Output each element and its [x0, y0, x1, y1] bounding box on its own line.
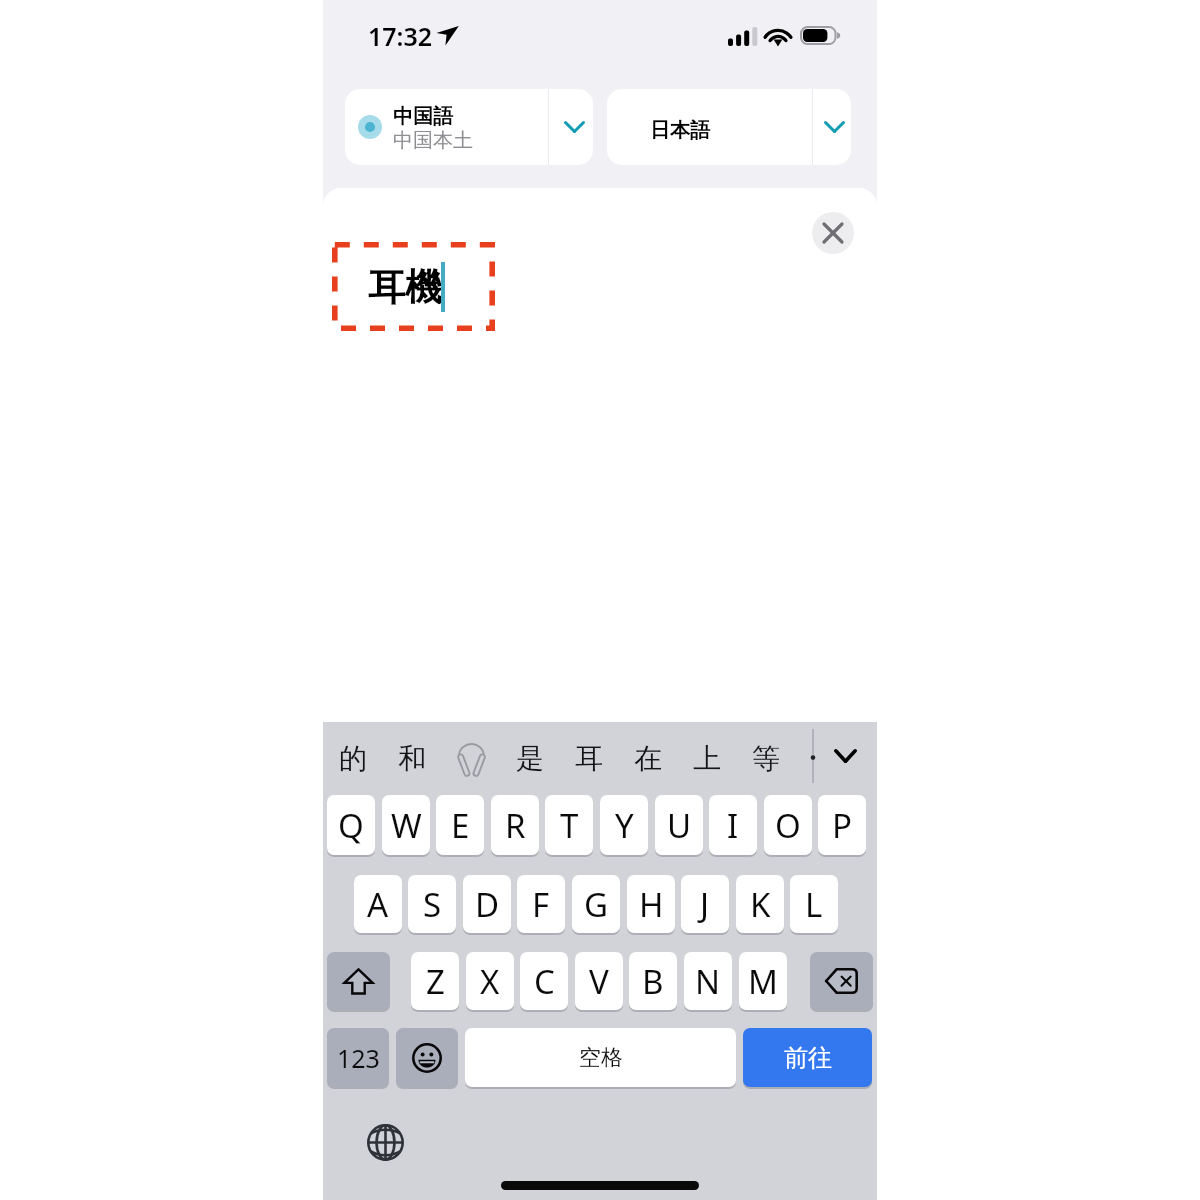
button[interactable]: K — [736, 875, 784, 933]
staticText: 空格 — [579, 1044, 623, 1072]
button[interactable]: 中国語 — [345, 89, 548, 165]
staticText: 是 — [516, 741, 544, 776]
staticText: T — [560, 803, 579, 848]
button[interactable]: 的 — [325, 725, 381, 791]
button[interactable]: Change target language — [813, 89, 851, 165]
staticText: 和 — [398, 741, 426, 776]
button[interactable]: Z — [411, 952, 459, 1010]
button[interactable]: R — [491, 795, 539, 855]
staticText: I — [727, 803, 739, 848]
staticText: R — [505, 803, 526, 848]
staticText: 17:32 — [368, 19, 433, 51]
staticText: U — [667, 803, 692, 848]
button[interactable]: S — [408, 875, 456, 933]
button[interactable]: E — [436, 795, 484, 855]
button[interactable]: Switch keyboard language — [363, 1120, 408, 1165]
staticText: N — [695, 959, 721, 1004]
staticText: O — [775, 803, 801, 848]
staticText: K — [750, 882, 771, 927]
button[interactable]: Change source language — [549, 89, 593, 165]
staticText: E — [451, 803, 470, 848]
staticText: 等 — [752, 741, 780, 776]
staticText: Q — [338, 803, 364, 848]
staticText: M — [748, 959, 778, 1004]
button[interactable]: O — [764, 795, 812, 855]
staticText: W — [391, 803, 422, 848]
staticText: F — [532, 882, 550, 927]
staticText: A — [367, 882, 389, 927]
button[interactable]: F — [517, 875, 565, 933]
button[interactable]: J — [681, 875, 729, 933]
staticText: P — [832, 803, 852, 848]
button[interactable]: M — [739, 952, 787, 1010]
staticText: 123 — [337, 1041, 380, 1075]
button[interactable]: X — [466, 952, 514, 1010]
button[interactable]: W — [382, 795, 430, 855]
button[interactable]: G — [572, 875, 620, 933]
staticText: 上 — [693, 741, 721, 776]
button[interactable]: 空格 — [465, 1028, 736, 1087]
button[interactable]: L — [790, 875, 838, 933]
button[interactable]: H — [627, 875, 675, 933]
button[interactable]: T — [545, 795, 593, 855]
staticText: J — [700, 882, 710, 927]
button[interactable]: A — [354, 875, 402, 933]
button[interactable]: U — [655, 795, 703, 855]
button[interactable]: 等 — [738, 725, 794, 791]
button[interactable]: N — [684, 952, 732, 1010]
button[interactable]: Backspace — [810, 952, 873, 1010]
button[interactable]: V — [575, 952, 623, 1010]
staticText: H — [639, 882, 664, 927]
button[interactable]: 和 — [384, 725, 440, 791]
button[interactable]: 日本語 — [607, 89, 812, 165]
staticText: 中国本土 — [393, 128, 473, 153]
staticText: Y — [615, 803, 634, 848]
button[interactable]: 前往 — [743, 1028, 872, 1087]
staticText: G — [584, 882, 609, 927]
staticText: D — [475, 882, 500, 927]
button[interactable]: 在 — [620, 725, 676, 791]
button[interactable]: Headphones emoji suggestion — [443, 725, 499, 791]
button[interactable]: Q — [327, 795, 375, 855]
button[interactable]: 上 — [679, 725, 735, 791]
button[interactable]: Clear text — [812, 212, 854, 254]
staticText: 的 — [339, 741, 367, 776]
staticText: B — [642, 959, 664, 1004]
button[interactable]: 是 — [502, 725, 558, 791]
staticText: Z — [426, 959, 445, 1004]
button[interactable]: Shift — [327, 952, 390, 1010]
button[interactable]: Y — [600, 795, 648, 855]
button[interactable]: D — [463, 875, 511, 933]
button[interactable]: Numbers and symbols — [327, 1028, 389, 1087]
button[interactable]: I — [709, 795, 757, 855]
staticText: 在 — [634, 741, 662, 776]
staticText: S — [423, 882, 442, 927]
staticText: 耳 — [575, 741, 603, 776]
staticText: V — [589, 959, 609, 1004]
button[interactable]: P — [818, 795, 866, 855]
staticText: X — [480, 959, 500, 1004]
button[interactable]: C — [520, 952, 568, 1010]
staticText: 耳機 — [368, 264, 442, 311]
staticText: 中国語 — [393, 104, 453, 129]
button[interactable]: 耳 — [561, 725, 617, 791]
staticText: L — [805, 882, 823, 927]
button[interactable]: Emoji — [396, 1028, 458, 1087]
staticText: 日本語 — [650, 118, 710, 143]
staticText: C — [534, 959, 555, 1004]
staticText: 前往 — [784, 1043, 832, 1073]
button[interactable]: Hide keyboard — [821, 723, 869, 789]
button[interactable]: B — [629, 952, 677, 1010]
